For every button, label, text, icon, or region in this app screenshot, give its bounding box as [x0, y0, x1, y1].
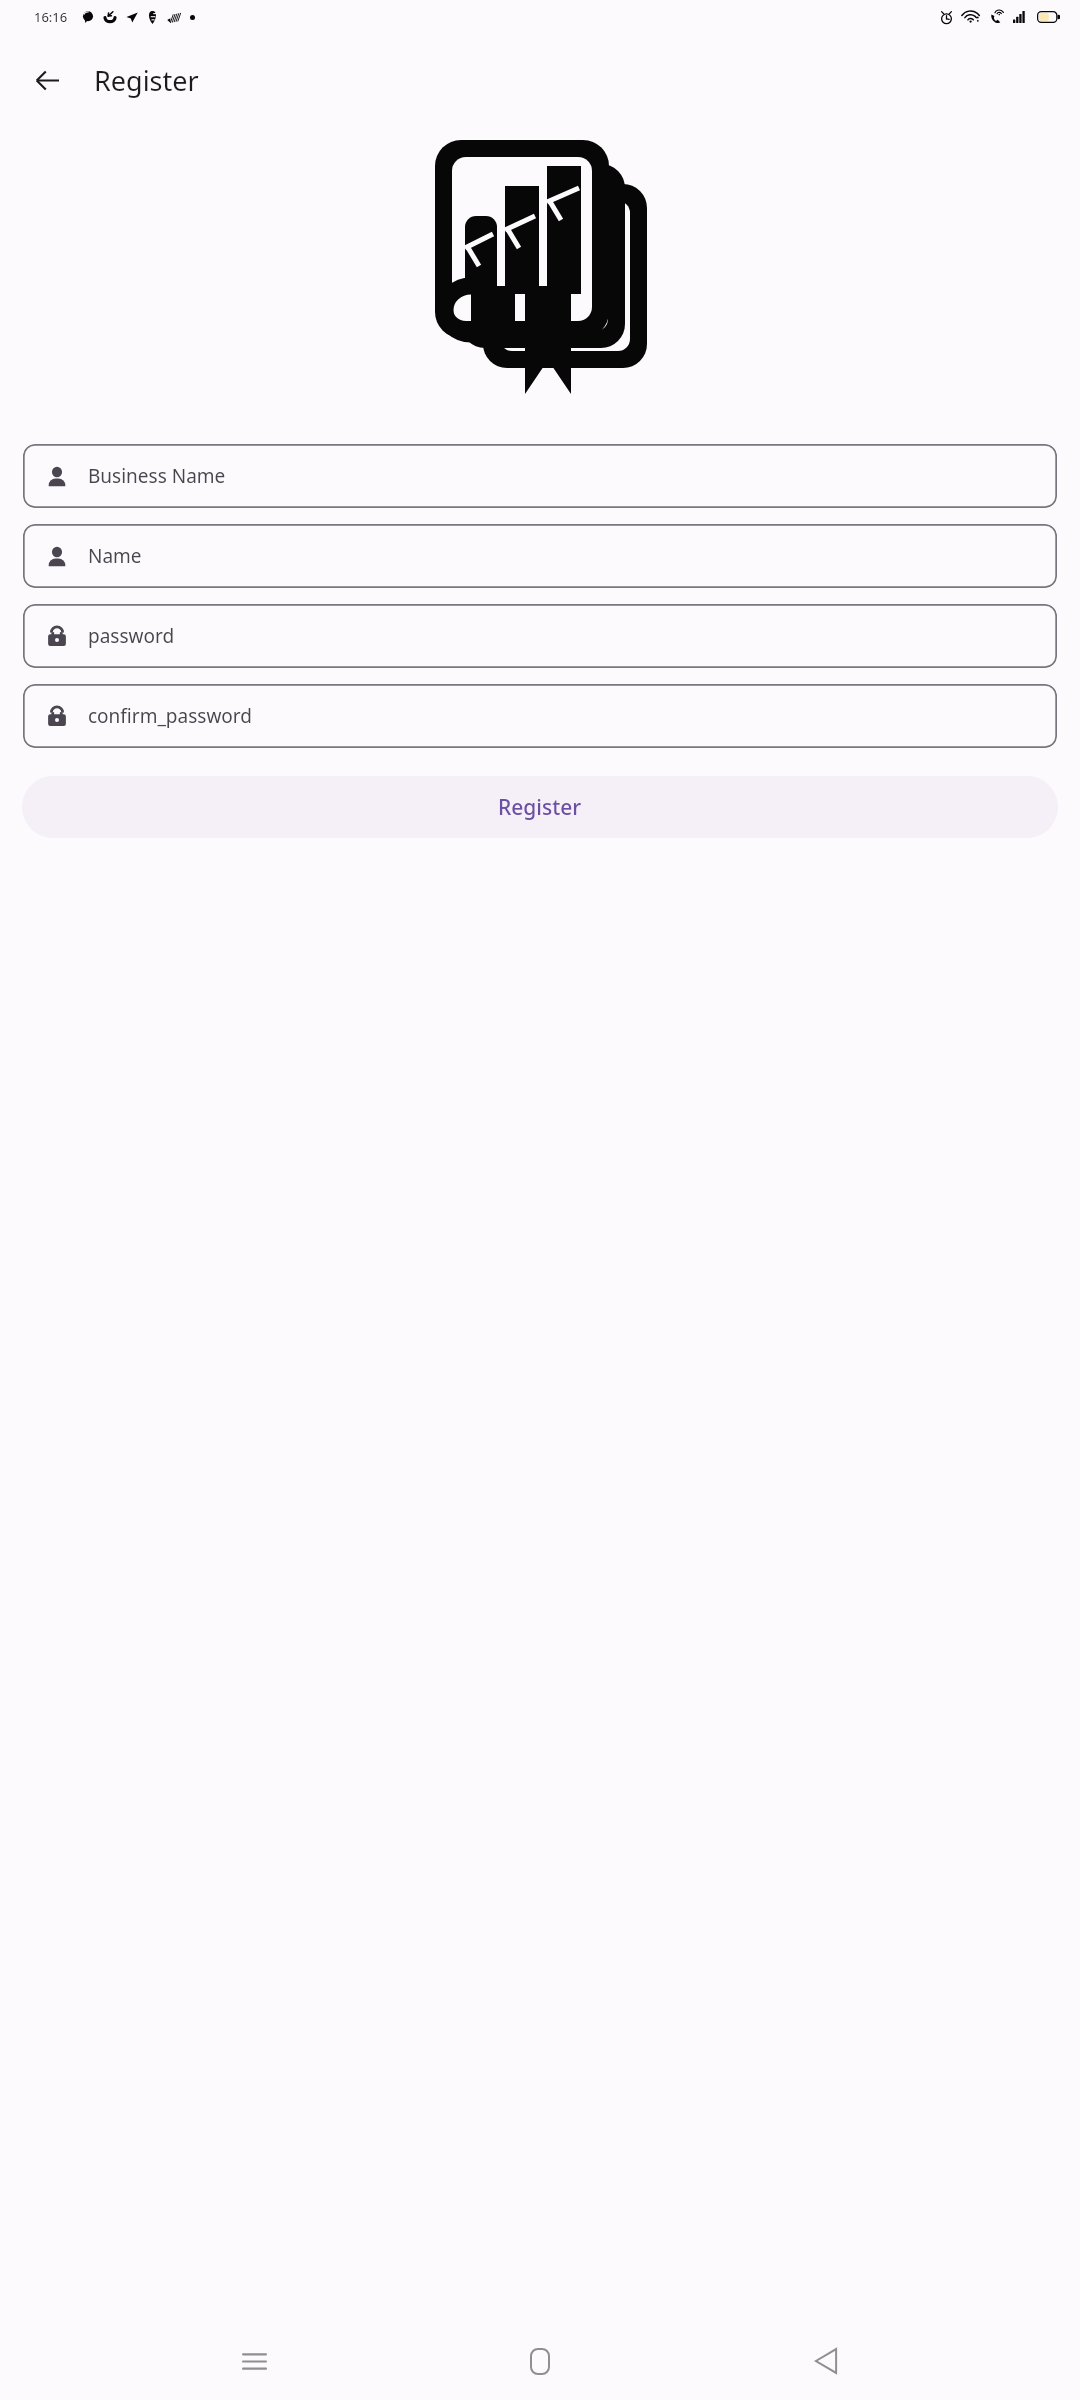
- button[interactable]: Name: [23, 524, 1057, 588]
- button[interactable]: Register: [22, 776, 1058, 838]
- staticText: 16:16: [34, 8, 68, 26]
- staticText: Register: [94, 62, 199, 99]
- button[interactable]: Home: [508, 2329, 572, 2393]
- button[interactable]: Business Name: [23, 444, 1057, 508]
- button[interactable]: confirm_password: [23, 684, 1057, 748]
- staticText: Name: [88, 543, 142, 569]
- button[interactable]: Back: [794, 2329, 858, 2393]
- staticText: Business Name: [88, 463, 226, 489]
- staticText: confirm_password: [88, 703, 252, 729]
- staticText: password: [88, 623, 175, 649]
- staticText: Register: [498, 793, 582, 822]
- button[interactable]: password: [23, 604, 1057, 668]
- button[interactable]: Back: [22, 55, 72, 105]
- button[interactable]: Recent apps: [222, 2329, 286, 2393]
